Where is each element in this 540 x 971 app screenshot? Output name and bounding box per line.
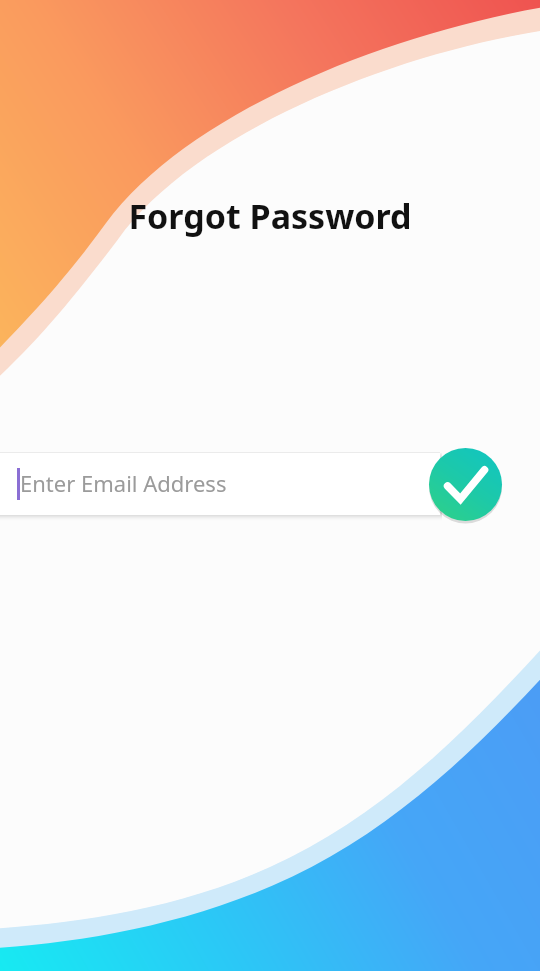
button[interactable]: Submit email address — [429, 448, 502, 521]
button[interactable]: Enter Email Address — [0, 452, 430, 515]
staticText: Enter Email Address — [20, 468, 227, 498]
staticText: Forgot Password — [128, 193, 412, 239]
